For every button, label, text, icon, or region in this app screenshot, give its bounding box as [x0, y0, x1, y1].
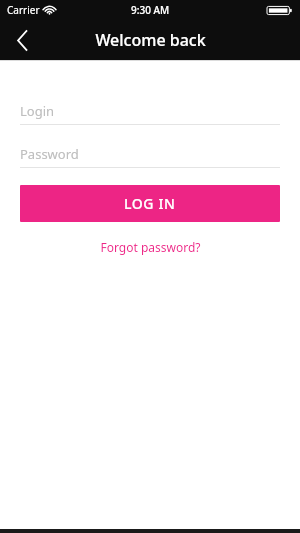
staticText: Forgot password? — [100, 239, 201, 255]
button[interactable]: Password — [20, 140, 280, 167]
button[interactable]: Login — [20, 97, 280, 124]
button[interactable]: LOG IN — [20, 185, 280, 222]
button[interactable]: Back — [0, 20, 44, 60]
staticText: Welcome back — [95, 29, 206, 51]
staticText: LOG IN — [124, 194, 176, 213]
staticText: Password — [20, 145, 79, 163]
staticText: 9:30 AM — [131, 3, 170, 17]
staticText: Login — [20, 102, 55, 120]
staticText: Carrier — [7, 3, 40, 17]
button[interactable]: Forgot password? — [94, 236, 207, 258]
